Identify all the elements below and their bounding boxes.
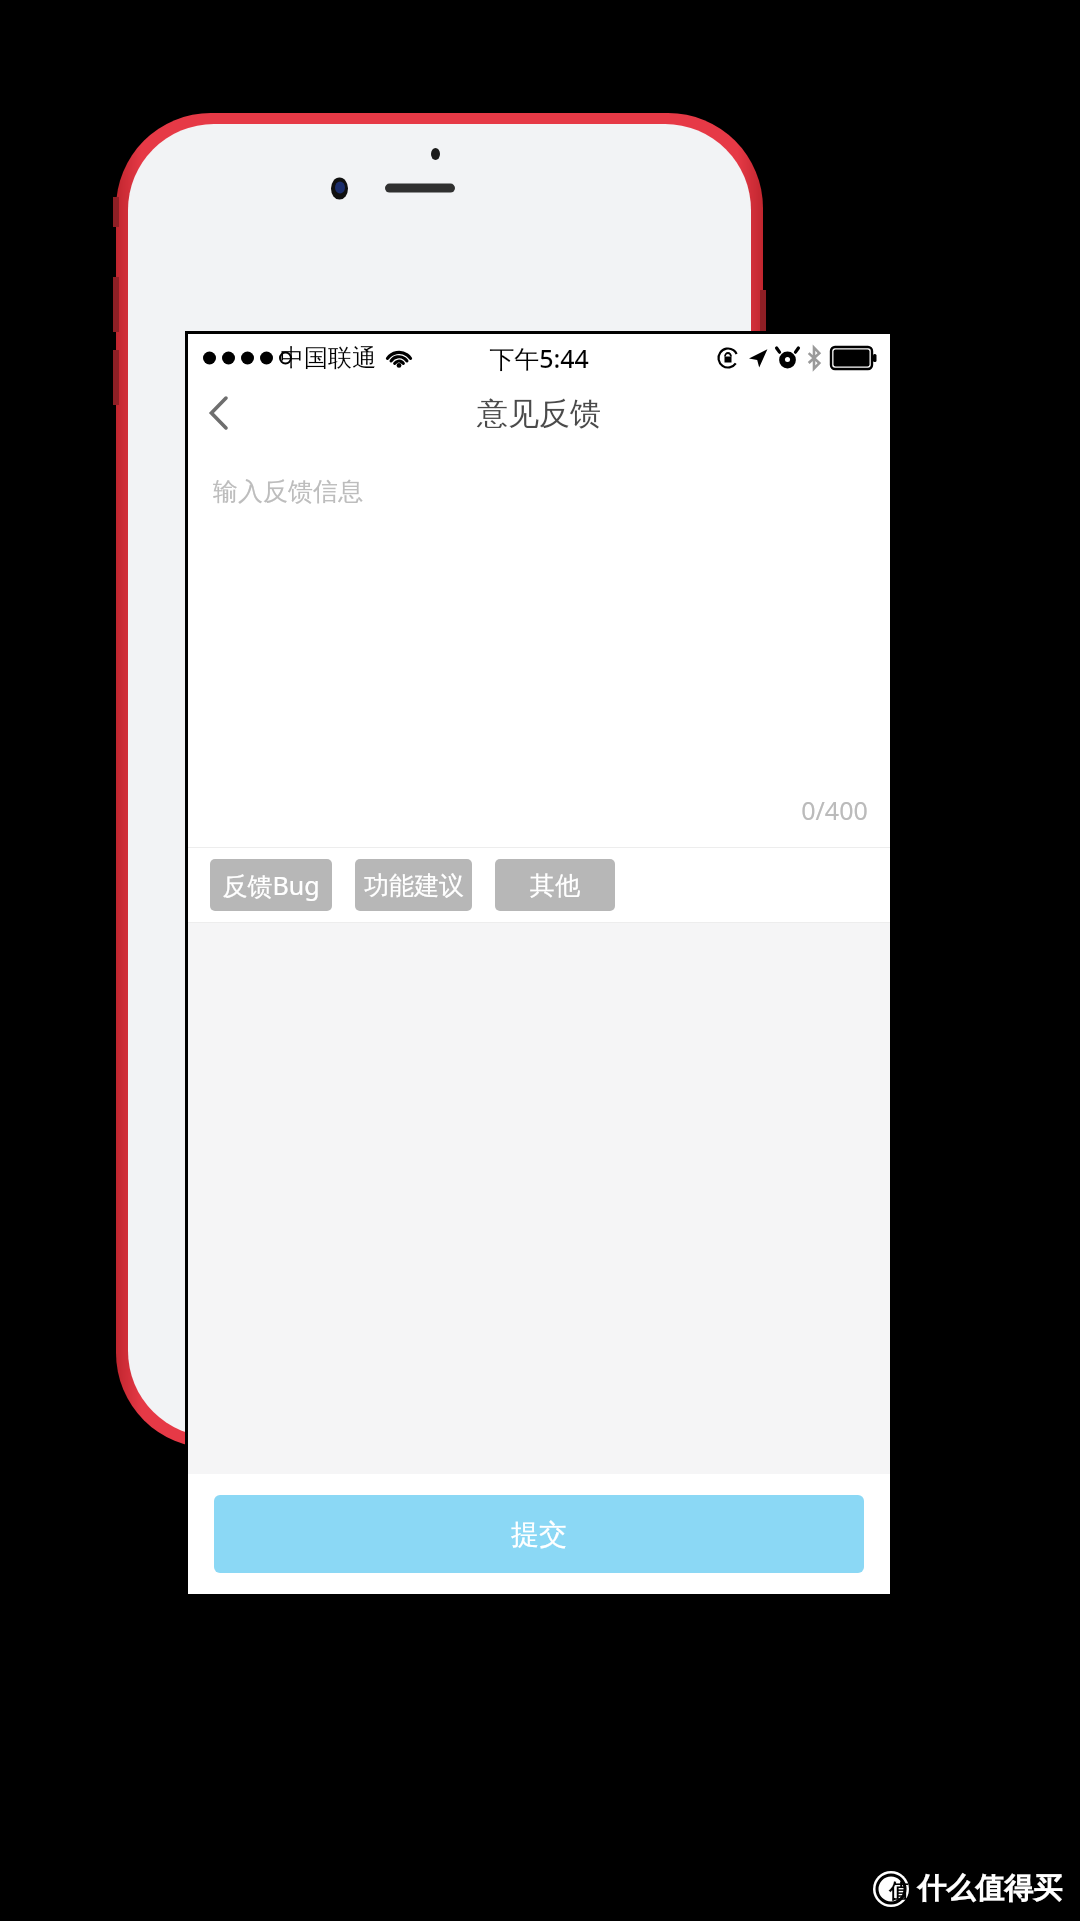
staticText: 什么值得买 [917,1870,1062,1907]
staticText: 值 [889,1879,909,1904]
staticText: 中国联通 [280,343,376,373]
staticText: 功能建议 [364,870,464,901]
button[interactable]: 反馈Bug [210,859,332,911]
staticText: 输入反馈信息 [213,476,363,507]
button[interactable]: 提交 [214,1495,864,1573]
staticText: 反馈Bug [222,868,320,902]
staticText: 提交 [511,1517,567,1552]
staticText: 意见反馈 [477,394,601,433]
staticText: 其他 [530,870,580,901]
button[interactable]: Back [188,382,250,444]
button[interactable]: 输入反馈信息 [188,444,890,847]
button[interactable]: 功能建议 [355,859,472,911]
button[interactable]: 其他 [495,859,615,911]
staticText: 下午5:44 [489,341,589,375]
staticText: 0/400 [801,793,868,827]
